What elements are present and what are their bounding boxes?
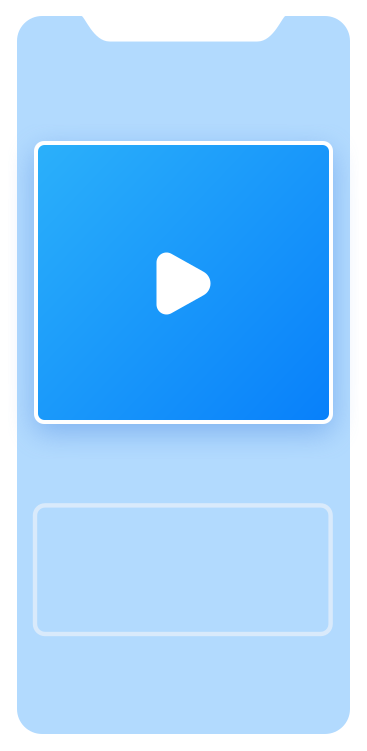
button[interactable]: Play video bbox=[34, 141, 333, 424]
